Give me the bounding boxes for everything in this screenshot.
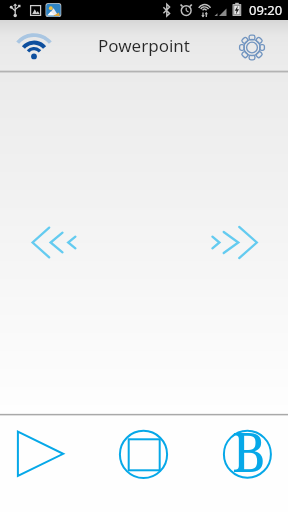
button[interactable]: Stop presentation xyxy=(96,415,192,512)
button[interactable]: Previous slide xyxy=(14,212,86,274)
button[interactable]: Black screen xyxy=(192,415,288,512)
staticText: 09:20 xyxy=(249,1,283,19)
button[interactable]: Settings xyxy=(230,21,274,71)
staticText: B xyxy=(231,413,267,488)
button[interactable]: Next slide xyxy=(204,212,276,274)
button[interactable]: Start presentation xyxy=(0,415,96,512)
staticText: Powerpoint xyxy=(98,34,190,57)
button[interactable]: Wi-Fi connection xyxy=(11,21,57,71)
